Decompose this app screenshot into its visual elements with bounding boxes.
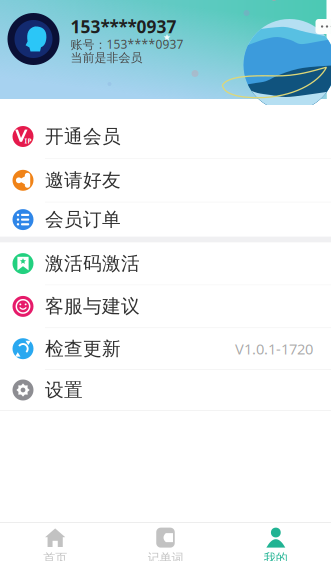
button[interactable]: 首页 xyxy=(0,523,110,561)
button[interactable]: 我的 xyxy=(221,523,331,561)
staticText: 首页 xyxy=(43,551,67,561)
staticText: 记单词 xyxy=(147,551,183,561)
staticText: 我的 xyxy=(264,551,288,561)
staticText: 检查更新 xyxy=(45,337,121,360)
staticText: 153****0937 xyxy=(70,15,176,38)
staticText: 邀请好友 xyxy=(45,169,121,192)
button[interactable]: 检查更新 xyxy=(0,328,331,369)
button[interactable]: 记单词 xyxy=(110,523,221,561)
button[interactable]: 会员订单 xyxy=(0,203,331,237)
button[interactable]: 客服与建议 xyxy=(0,285,331,327)
button[interactable]: 激活码激活 xyxy=(0,243,331,285)
button[interactable]: IP xyxy=(0,115,331,158)
button[interactable]: 邀请好友 xyxy=(0,159,331,202)
staticText: 会员订单 xyxy=(45,208,121,231)
staticText: V1.0.1-1720 xyxy=(235,339,313,358)
staticText: 账号：153****0937 xyxy=(70,36,183,52)
staticText: 开通会员 xyxy=(45,125,121,148)
staticText: 设置 xyxy=(45,378,83,401)
staticText: 客服与建议 xyxy=(45,295,140,318)
staticText: 当前是非会员 xyxy=(70,50,142,65)
staticText: IP xyxy=(24,137,31,145)
staticText: 激活码激活 xyxy=(45,252,140,275)
button[interactable]: 设置 xyxy=(0,370,331,410)
